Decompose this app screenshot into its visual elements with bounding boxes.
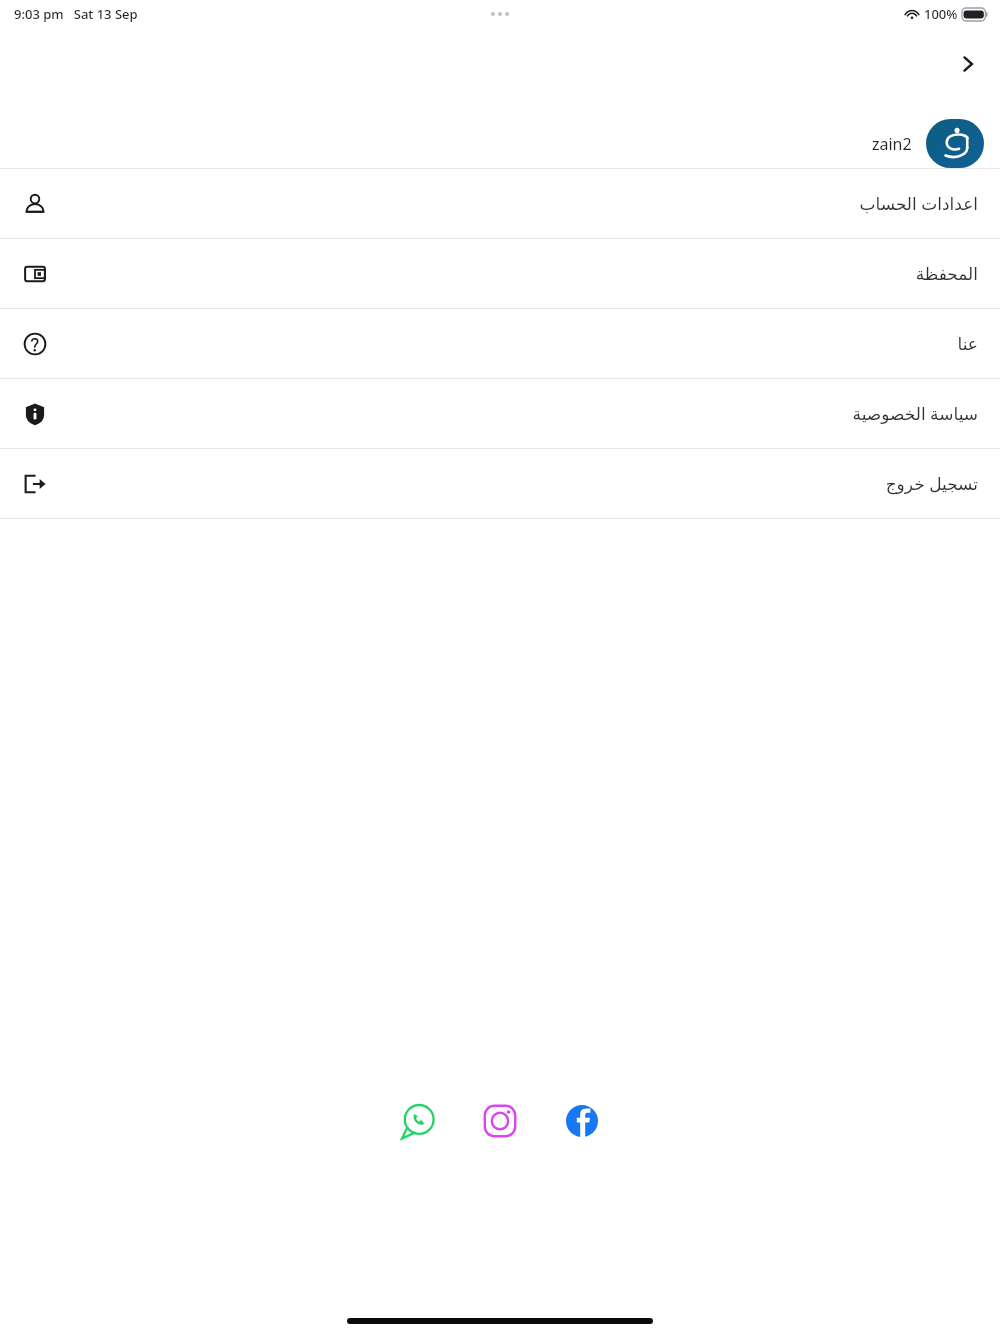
button[interactable]: اعدادات الحساب <box>0 169 1000 238</box>
button[interactable]: تسجيل خروج <box>0 449 1000 518</box>
button[interactable]: Facebook <box>559 1098 605 1144</box>
staticText: تسجيل خروج <box>885 472 978 495</box>
button[interactable]: Back <box>946 42 990 86</box>
button[interactable]: المحفظة <box>0 239 1000 308</box>
staticText: المحفظة <box>915 264 978 284</box>
staticText: اعدادات الحساب <box>859 192 978 215</box>
button[interactable]: WhatsApp <box>395 1098 441 1144</box>
staticText: 9:03 pm Sat 13 Sep <box>14 5 138 23</box>
staticText: 100% <box>924 5 958 23</box>
button[interactable]: zain2 <box>872 119 984 168</box>
staticText: سياسة الخصوصية <box>852 402 978 425</box>
staticText: عنا <box>957 334 978 354</box>
button[interactable]: عنا <box>0 309 1000 378</box>
button[interactable]: سياسة الخصوصية <box>0 379 1000 448</box>
button[interactable]: Instagram <box>477 1098 523 1144</box>
staticText: zain2 <box>872 133 912 155</box>
